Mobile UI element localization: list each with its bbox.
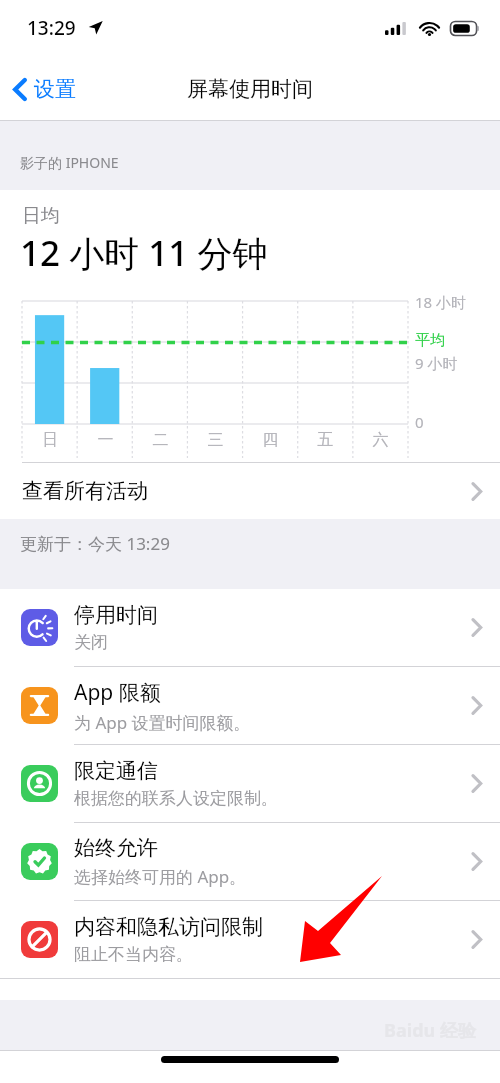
staticText: 内容和隐私访问限制 xyxy=(74,914,263,940)
staticText: 四 xyxy=(243,430,298,450)
staticText: 13:29 xyxy=(27,15,76,41)
button[interactable]: 内容和隐私访问限制 xyxy=(0,901,500,978)
staticText: 五 xyxy=(298,430,353,450)
staticText: 影子的 IPHONE xyxy=(20,153,119,172)
staticText: App 限额 xyxy=(74,678,161,707)
staticText: 日均 xyxy=(22,204,60,228)
staticText: 屏幕使用时间 xyxy=(187,76,313,102)
staticText: 日 xyxy=(22,430,78,450)
staticText: 三 xyxy=(188,430,243,450)
button[interactable]: 停用时间 xyxy=(0,589,500,666)
button[interactable]: 设置 xyxy=(0,58,86,120)
staticText: 二 xyxy=(133,430,188,450)
staticText: 查看所有活动 xyxy=(22,478,471,504)
staticText: 根据您的联系人设定限制。 xyxy=(74,788,278,809)
staticText: 18 小时 xyxy=(415,292,467,312)
staticText: 六 xyxy=(353,430,408,450)
staticText: 始终允许 xyxy=(74,835,158,861)
staticText: 设置 xyxy=(34,76,76,102)
staticText: 一 xyxy=(78,430,133,450)
staticText: 更新于：今天 13:29 xyxy=(20,532,170,555)
staticText: 0 xyxy=(415,412,424,432)
staticText: 为 App 设置时间限额。 xyxy=(74,711,251,734)
staticText: 阻止不当内容。 xyxy=(74,944,193,965)
staticText: Baidu 经验 xyxy=(384,1018,476,1043)
staticText: 12 小时 11 分钟 xyxy=(20,229,268,277)
staticText: 限定通信 xyxy=(74,758,158,784)
staticText: 停用时间 xyxy=(74,602,158,628)
staticText: 关闭 xyxy=(74,632,108,653)
staticText: 平均 xyxy=(415,331,445,350)
button[interactable]: 查看所有活动 xyxy=(0,463,500,519)
button[interactable]: 始终允许 xyxy=(0,823,500,900)
button[interactable]: App 限额 xyxy=(0,667,500,744)
staticText: 选择始终可用的 App。 xyxy=(74,865,247,888)
button[interactable]: 限定通信 xyxy=(0,745,500,822)
staticText: 9 小时 xyxy=(415,353,458,373)
